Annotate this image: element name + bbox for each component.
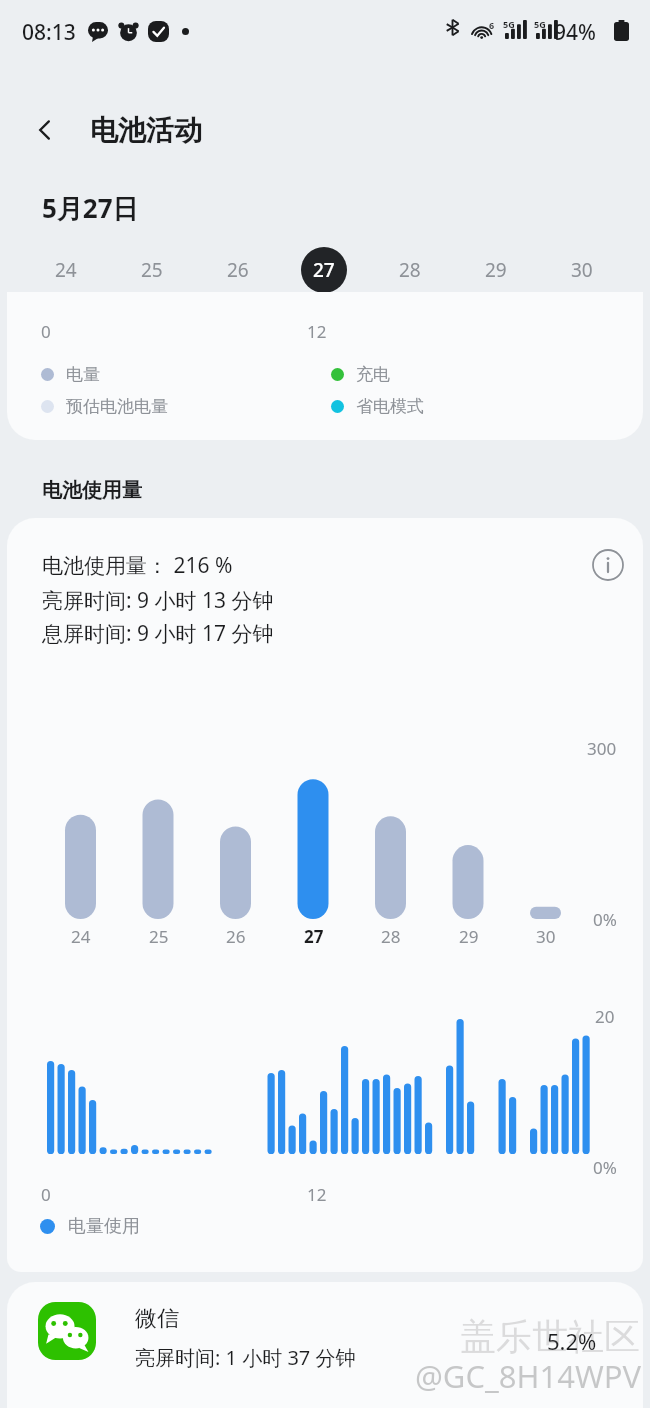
staticText: 27 (304, 925, 324, 948)
staticText: 26 (227, 257, 249, 283)
staticText: 亮屏时间: 1 小时 37 分钟 (135, 1344, 356, 1371)
staticText: 24 (71, 925, 91, 948)
staticText: 电量 (66, 364, 100, 385)
staticText: 省电模式 (356, 396, 424, 417)
staticText: 电池使用量 (42, 478, 142, 503)
button[interactable]: 24 (36, 240, 96, 300)
button[interactable]: 0 (7, 292, 643, 440)
staticText: 24 (55, 257, 77, 283)
staticText: 电量使用 (68, 1215, 140, 1238)
staticText: 5月27日 (42, 190, 139, 226)
staticText: 28 (381, 925, 401, 948)
staticText: 08:13 (22, 18, 76, 47)
staticText: 12 (307, 1183, 327, 1206)
button[interactable]: 27 (290, 925, 338, 948)
button[interactable]: 30 (522, 925, 570, 948)
staticText: 94% (554, 18, 596, 47)
staticText: 预估电池电量 (66, 396, 168, 417)
staticText: 300 (587, 737, 617, 760)
button[interactable]: Info (585, 542, 631, 588)
button[interactable]: 25 (135, 925, 183, 948)
staticText: 12 (307, 320, 327, 343)
button[interactable]: Back (22, 107, 68, 153)
button[interactable]: 26 (212, 925, 260, 948)
button[interactable]: 28 (380, 240, 440, 300)
staticText: 30 (571, 257, 593, 283)
button[interactable]: 30 (552, 240, 612, 300)
staticText: 26 (226, 925, 246, 948)
staticText: 0% (593, 908, 617, 931)
button[interactable]: 25 (122, 240, 182, 300)
staticText: 亮屏时间: 9 小时 13 分钟 (42, 586, 274, 615)
button[interactable]: 26 (208, 240, 268, 300)
button[interactable]: 微信 (7, 1282, 643, 1408)
staticText: 充电 (356, 364, 390, 385)
button[interactable]: 29 (466, 240, 526, 300)
button[interactable]: 24 (57, 925, 105, 948)
staticText: 电池使用量： 216 % (42, 551, 233, 580)
staticText: 30 (536, 925, 556, 948)
staticText: 5.2% (547, 1326, 597, 1356)
staticText: 微信 (135, 1305, 179, 1333)
staticText: 0% (593, 1156, 617, 1179)
staticText: 25 (149, 925, 169, 948)
staticText: 20 (595, 1005, 615, 1028)
staticText: 盖乐世社区 (460, 1314, 640, 1359)
staticText: 息屏时间: 9 小时 17 分钟 (42, 619, 274, 648)
staticText: 5G (503, 18, 515, 30)
staticText: 29 (459, 925, 479, 948)
button[interactable]: 28 (367, 925, 415, 948)
staticText: @GC_8H14WPV (415, 1355, 642, 1397)
staticText: 5G (534, 18, 546, 30)
staticText: 6 (489, 19, 495, 31)
staticText: 28 (399, 257, 421, 283)
button[interactable]: 29 (445, 925, 493, 948)
staticText: 0 (41, 320, 51, 343)
staticText: 0 (41, 1183, 51, 1206)
staticText: 25 (141, 257, 163, 283)
staticText: 29 (485, 257, 507, 283)
staticText: 电池活动 (90, 113, 202, 148)
button[interactable]: 27 (294, 240, 354, 300)
staticText: 27 (313, 257, 335, 283)
